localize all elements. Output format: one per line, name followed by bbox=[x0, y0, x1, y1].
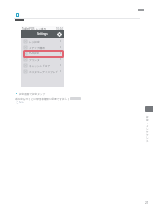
staticText: ・ bbox=[146, 121, 149, 124]
button[interactable]: レジ設定 bbox=[21, 38, 64, 44]
staticText: ン bbox=[146, 127, 149, 130]
button[interactable]: キャッシュドロア bbox=[21, 62, 64, 68]
button[interactable]: カスタマーディスプレイ bbox=[21, 68, 64, 74]
staticText: テ bbox=[146, 130, 149, 133]
staticText: メ bbox=[146, 124, 149, 127]
button[interactable]: POS設定 bbox=[21, 50, 64, 56]
staticText: 定 bbox=[146, 118, 149, 121]
staticText: メディア機器 bbox=[29, 46, 45, 49]
staticText: TabletPOS レジ番号 bbox=[22, 27, 47, 31]
staticText: キャッシュドロア bbox=[29, 64, 51, 67]
button[interactable]: プリンタ bbox=[21, 56, 64, 62]
staticText: プリンタ bbox=[29, 58, 40, 61]
staticText: Settings bbox=[37, 32, 48, 36]
staticText: ナ bbox=[146, 133, 149, 136]
other: Settings bbox=[57, 32, 62, 37]
staticText: こちら bbox=[16, 100, 24, 103]
staticText: POS設定 bbox=[29, 51, 40, 55]
button[interactable]: メディア機器 bbox=[21, 44, 64, 50]
button[interactable]: Settings bbox=[57, 32, 62, 37]
staticText: カスタマーディスプレイ bbox=[29, 70, 59, 73]
staticText: ン bbox=[146, 136, 149, 139]
staticText: 本設定を行うには管理者権限が必要です詳しくは bbox=[15, 97, 73, 100]
staticText: レジ設定 bbox=[29, 40, 40, 43]
staticText: 設定画面で設定タップ bbox=[19, 92, 46, 95]
button[interactable]: Chapter tab bbox=[145, 106, 153, 112]
staticText: 設 bbox=[146, 115, 149, 118]
staticText: ス bbox=[146, 139, 149, 142]
staticText: 10:24 bbox=[56, 27, 63, 31]
staticText: 21 bbox=[145, 201, 149, 205]
